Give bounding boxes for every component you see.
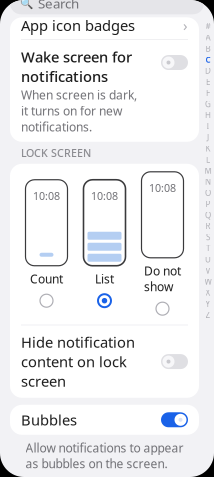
staticText: H <box>205 110 211 120</box>
staticText: Wake screen for notifications <box>21 47 132 86</box>
staticText: List <box>95 271 114 287</box>
button[interactable]: 10:08 <box>133 172 191 317</box>
staticText: LOCK SCREEN <box>21 146 91 160</box>
staticText: T <box>206 243 210 254</box>
staticText: 10:08 <box>149 181 176 195</box>
staticText: P <box>205 199 210 209</box>
staticText: D <box>205 65 211 76</box>
staticText: F <box>206 88 210 98</box>
staticText: W <box>204 276 211 287</box>
staticText: G <box>205 99 211 109</box>
staticText: › <box>183 16 188 35</box>
staticText: 10:08 <box>91 189 118 203</box>
staticText: U <box>205 254 211 265</box>
staticText: Do not show <box>144 263 181 295</box>
staticText: A <box>205 32 210 43</box>
staticText: Z <box>205 310 210 320</box>
staticText: 🔍 <box>20 0 33 9</box>
staticText: I <box>206 121 209 131</box>
staticText: O <box>205 187 211 198</box>
button[interactable]: 10:08 <box>75 180 133 309</box>
staticText: E <box>206 76 210 87</box>
staticText: Allow notifications to appear as bubbles… <box>25 440 183 472</box>
staticText: C <box>205 54 210 65</box>
staticText: Search <box>38 0 79 12</box>
staticText: Count <box>30 271 63 287</box>
staticText: M <box>204 165 211 176</box>
button[interactable]: App icon badges <box>10 17 199 33</box>
staticText: Bubbles <box>21 410 77 430</box>
button[interactable]: 10:08 <box>17 180 75 309</box>
staticText: Y <box>205 298 210 309</box>
staticText: X <box>205 287 210 298</box>
staticText: J <box>207 132 209 143</box>
button[interactable]: Toggle on <box>161 412 188 427</box>
staticText: Hide notification content on lock screen <box>21 332 135 391</box>
staticText: Q <box>205 210 211 220</box>
staticText: L <box>206 154 210 165</box>
button[interactable]: 🔍 <box>10 0 204 14</box>
staticText: N <box>205 176 211 187</box>
button[interactable]: Wake screen for notifications <box>10 40 199 142</box>
staticText: R <box>205 221 210 231</box>
staticText: # <box>205 21 210 32</box>
button[interactable]: Toggle off <box>161 55 188 70</box>
staticText: S <box>206 232 210 242</box>
button[interactable]: Bubbles <box>10 405 199 435</box>
staticText: NOTIFICATIONS <box>21 476 102 477</box>
button[interactable]: Toggle off <box>161 354 188 369</box>
staticText: 10:08 <box>33 189 60 203</box>
staticText: When screen is dark, it turns on for new… <box>21 87 137 135</box>
staticText: B <box>205 43 210 54</box>
staticText: K <box>205 143 210 154</box>
staticText: App icon badges <box>21 16 135 35</box>
staticText: V <box>205 265 210 276</box>
button[interactable]: Hide notification content on lock screen <box>10 325 199 398</box>
